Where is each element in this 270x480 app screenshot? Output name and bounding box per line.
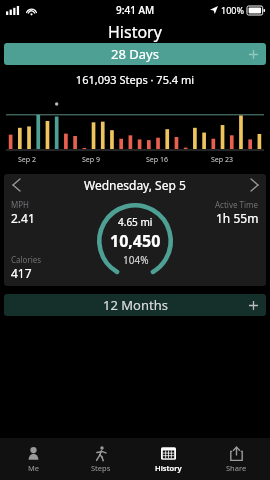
button[interactable]: Me bbox=[0, 438, 67, 480]
staticText: Sep 2 bbox=[18, 155, 36, 165]
staticText: 10,450 bbox=[110, 230, 161, 252]
button[interactable]: Steps bbox=[67, 438, 134, 480]
staticText: MPH bbox=[11, 199, 30, 210]
staticText: 28 Days bbox=[111, 45, 159, 63]
staticText: History bbox=[108, 21, 162, 43]
staticText: 1h 55m bbox=[216, 210, 259, 226]
staticText: 4.65 mi bbox=[118, 215, 153, 229]
staticText: Calories bbox=[11, 254, 42, 265]
staticText: 100% bbox=[221, 4, 244, 16]
button[interactable]: 12 Months bbox=[4, 294, 266, 316]
staticText: 417 bbox=[11, 265, 32, 281]
staticText: 161,093 Steps · 75.4 mi bbox=[0, 72, 270, 87]
button[interactable]: Share bbox=[202, 438, 270, 480]
staticText: 104% bbox=[123, 253, 149, 267]
button[interactable]: Next day bbox=[242, 174, 266, 196]
staticText: Wednesday, Sep 5 bbox=[84, 177, 186, 193]
staticText: Sep 16 bbox=[146, 155, 168, 165]
staticText: Active Time bbox=[215, 199, 259, 210]
staticText: Sep 23 bbox=[211, 155, 233, 165]
staticText: History bbox=[155, 463, 182, 473]
staticText: Share bbox=[226, 463, 247, 473]
staticText: Me bbox=[28, 463, 40, 473]
button[interactable]: 28 Days bbox=[4, 43, 266, 65]
button[interactable]: Previous day bbox=[4, 174, 28, 196]
staticText: Sep 9 bbox=[82, 155, 100, 165]
staticText: 2.41 bbox=[11, 210, 35, 226]
staticText: 9:41 AM bbox=[116, 3, 155, 17]
button[interactable]: History bbox=[134, 438, 202, 480]
staticText: 12 Months bbox=[103, 296, 168, 314]
staticText: Steps bbox=[91, 463, 111, 473]
